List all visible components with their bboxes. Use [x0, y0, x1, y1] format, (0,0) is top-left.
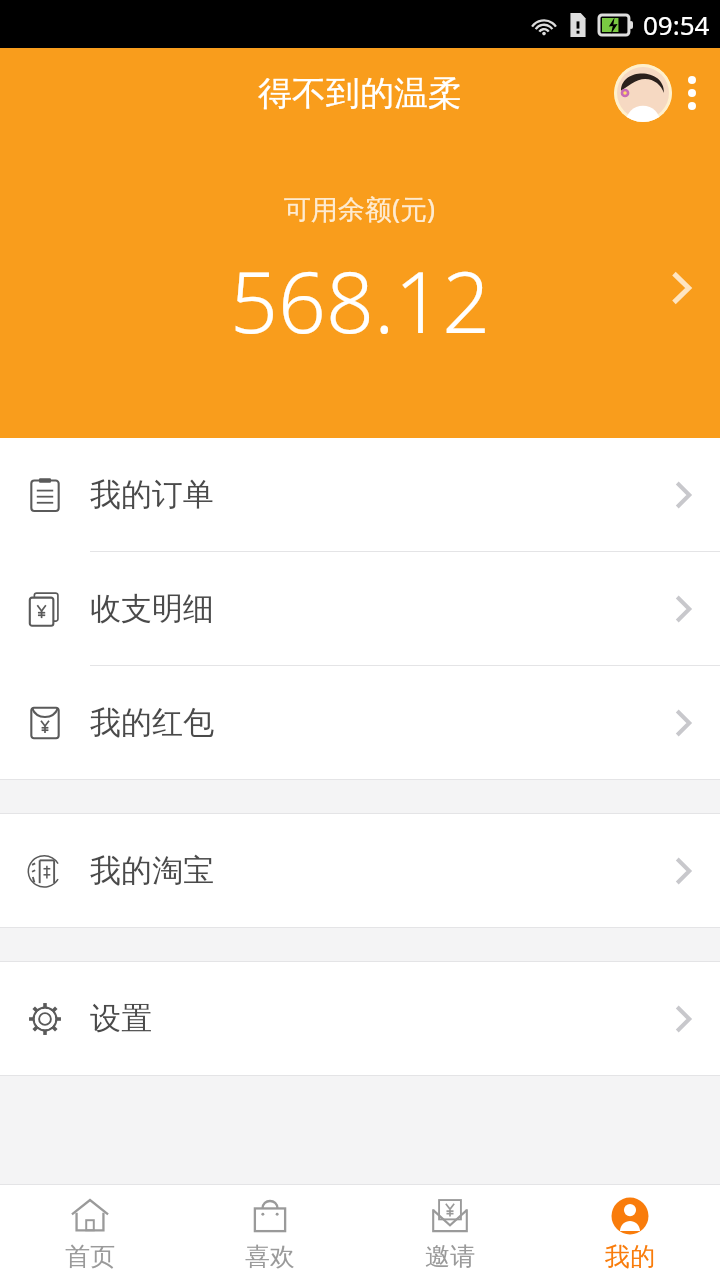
- staticText: 收支明细: [90, 589, 214, 628]
- button[interactable]: 我的红包: [0, 666, 720, 779]
- staticText: 568.12: [230, 243, 491, 357]
- staticText: 设置: [90, 999, 152, 1038]
- button[interactable]: 喜欢: [180, 1185, 360, 1280]
- button[interactable]: 我的订单: [0, 438, 720, 551]
- button[interactable]: 我的淘宝: [0, 814, 720, 927]
- button[interactable]: 邀请: [360, 1185, 540, 1280]
- staticText: 我的淘宝: [90, 851, 214, 890]
- button[interactable]: 收支明细: [0, 552, 720, 665]
- staticText: 09:54: [643, 7, 710, 42]
- button[interactable]: 可用余额(元): [0, 190, 720, 357]
- staticText: 我的红包: [90, 703, 214, 742]
- button[interactable]: More options: [672, 64, 712, 122]
- staticText: 邀请: [425, 1241, 475, 1272]
- staticText: 我的: [605, 1241, 655, 1272]
- button[interactable]: 我的: [540, 1185, 720, 1280]
- button[interactable]: Profile avatar: [614, 64, 672, 122]
- staticText: 喜欢: [245, 1241, 295, 1272]
- staticText: 我的订单: [90, 475, 214, 514]
- button[interactable]: 设置: [0, 962, 720, 1075]
- staticText: 可用余额(元): [284, 190, 436, 227]
- staticText: 得不到的温柔: [258, 72, 462, 115]
- button[interactable]: 首页: [0, 1185, 180, 1280]
- staticText: 首页: [65, 1241, 115, 1272]
